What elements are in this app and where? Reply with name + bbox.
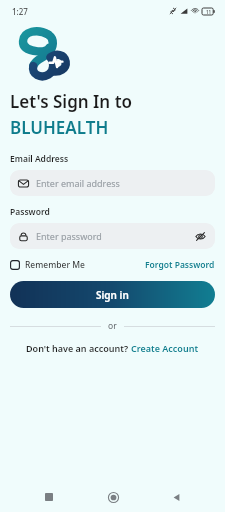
staticText: Let's Sign In to [10, 90, 133, 113]
button[interactable]: Remember Me [10, 259, 85, 271]
staticText: BLUHEALTH [10, 116, 109, 139]
staticText: Forgot Password [145, 259, 215, 271]
staticText: Create Account [131, 342, 199, 354]
staticText: 11 [206, 9, 212, 15]
button[interactable]: Enter email address [10, 170, 215, 196]
button[interactable]: Home [99, 483, 127, 511]
staticText: Enter password [36, 230, 194, 242]
staticText: Don't have an account? [26, 342, 131, 354]
staticText: Enter email address [36, 177, 207, 189]
staticText: Password [10, 206, 50, 218]
staticText: Email Address [10, 153, 69, 165]
button[interactable]: Show password [194, 230, 207, 243]
staticText: or [108, 320, 117, 332]
button[interactable]: Create Account [131, 342, 199, 354]
staticText: Sign in [96, 288, 129, 302]
button[interactable]: Back [162, 483, 190, 511]
staticText: Remember Me [25, 259, 85, 271]
button[interactable]: Enter password [10, 223, 215, 249]
staticText: 1:27 [12, 6, 28, 17]
button[interactable]: Recents [35, 483, 63, 511]
button[interactable]: Sign in [10, 281, 215, 308]
button[interactable]: Forgot Password [145, 259, 215, 271]
